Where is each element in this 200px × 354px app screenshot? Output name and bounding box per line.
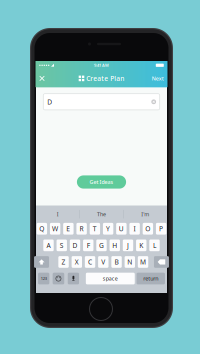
- staticText: Get Ideas: [89, 178, 113, 186]
- button[interactable]: R: [76, 223, 87, 235]
- button[interactable]: Next: [149, 70, 167, 87]
- staticText: R: [80, 224, 84, 233]
- button[interactable]: F: [83, 239, 93, 251]
- button[interactable]: 123: [38, 273, 49, 284]
- button[interactable]: O: [143, 223, 153, 235]
- staticText: M: [140, 257, 146, 266]
- button[interactable]: Get Ideas: [77, 175, 126, 189]
- button[interactable]: A: [43, 239, 54, 251]
- staticText: X: [75, 257, 79, 266]
- staticText: 9:41 AM: [94, 63, 109, 68]
- button[interactable]: G: [96, 239, 107, 251]
- staticText: Create Plan: [86, 74, 124, 83]
- staticText: return: [143, 275, 158, 282]
- button[interactable]: D: [70, 239, 80, 251]
- staticText: I: [134, 224, 136, 233]
- staticText: E: [66, 224, 70, 233]
- button[interactable]: J: [123, 239, 133, 251]
- button[interactable]: W: [50, 223, 60, 235]
- button[interactable]: S: [56, 239, 67, 251]
- button[interactable]: T: [90, 223, 100, 235]
- staticText: W: [52, 224, 58, 233]
- staticText: J: [127, 241, 129, 250]
- button[interactable]: Q: [37, 223, 47, 235]
- staticText: I'm: [141, 211, 149, 218]
- button[interactable]: B: [111, 256, 122, 268]
- staticText: S: [60, 241, 64, 250]
- staticText: U: [119, 224, 124, 233]
- staticText: 123: [41, 276, 47, 281]
- button[interactable]: Z: [58, 256, 69, 268]
- button[interactable]: E: [63, 223, 74, 235]
- staticText: L: [153, 241, 156, 250]
- staticText: P: [159, 224, 163, 233]
- staticText: K: [139, 241, 143, 250]
- button[interactable]: U: [116, 223, 127, 235]
- button[interactable]: Close: [36, 71, 48, 86]
- button[interactable]: I: [129, 223, 140, 235]
- staticText: D: [47, 97, 52, 106]
- staticText: Q: [39, 224, 44, 233]
- staticText: T: [93, 224, 97, 233]
- staticText: The: [97, 211, 106, 218]
- staticText: Next: [152, 75, 164, 82]
- staticText: I: [57, 211, 59, 218]
- button[interactable]: space: [86, 273, 135, 284]
- button[interactable]: L: [149, 239, 160, 251]
- staticText: V: [101, 257, 105, 266]
- staticText: Z: [61, 257, 65, 266]
- staticText: G: [99, 241, 104, 250]
- button[interactable]: N: [125, 256, 135, 268]
- button[interactable]: M: [138, 256, 148, 268]
- button[interactable]: Shift: [34, 256, 49, 268]
- staticText: B: [114, 257, 118, 266]
- button[interactable]: Delete: [154, 256, 169, 268]
- button[interactable]: P: [156, 223, 166, 235]
- staticText: space: [103, 275, 118, 282]
- button[interactable]: X: [72, 256, 82, 268]
- button[interactable]: D: [43, 94, 160, 110]
- button[interactable]: C: [85, 256, 95, 268]
- staticText: A: [46, 241, 50, 250]
- button[interactable]: V: [98, 256, 108, 268]
- staticText: O: [145, 224, 150, 233]
- staticText: C: [88, 257, 92, 266]
- staticText: H: [112, 241, 117, 250]
- button[interactable]: Y: [103, 223, 113, 235]
- staticText: Y: [106, 224, 110, 233]
- button[interactable]: H: [109, 239, 120, 251]
- button[interactable]: Dictation: [68, 273, 79, 284]
- staticText: D: [72, 241, 77, 250]
- staticText: F: [87, 241, 90, 250]
- button[interactable]: K: [136, 239, 146, 251]
- button[interactable]: Emoji keyboard: [53, 273, 64, 284]
- button[interactable]: return: [137, 273, 165, 284]
- staticText: N: [127, 257, 132, 266]
